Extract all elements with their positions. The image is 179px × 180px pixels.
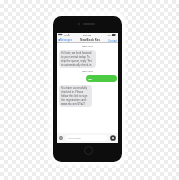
staticText: Text Message	[68, 137, 81, 140]
button[interactable]: Contact	[108, 39, 118, 42]
staticText: Messages	[60, 38, 73, 42]
button[interactable]: You have successfully checked in. Please…	[59, 85, 92, 107]
button[interactable]: Home	[84, 146, 93, 155]
staticText: NewBook Res	[80, 38, 100, 42]
button[interactable]: Text Message	[66, 135, 107, 141]
button[interactable]: Send	[110, 135, 116, 141]
staticText: Contact	[108, 39, 118, 42]
button[interactable]: Hi Scott, we look forward to your arriva…	[59, 50, 96, 68]
staticText: You have successfully checked in. Please…	[61, 86, 90, 106]
staticText: 100%	[107, 34, 112, 36]
staticText: Today 10:26	[82, 70, 93, 73]
staticText: Hi Scott, we look forward to your arriva…	[61, 51, 94, 67]
staticText: Today 10:24	[82, 45, 93, 48]
button[interactable]: Yes	[86, 75, 117, 82]
button[interactable]: Back to Messages	[58, 38, 73, 42]
staticText: 9:41 AM	[83, 34, 91, 37]
staticText: Carrier	[64, 34, 70, 36]
staticText: Yes	[88, 77, 92, 80]
button[interactable]: Camera	[59, 136, 63, 140]
